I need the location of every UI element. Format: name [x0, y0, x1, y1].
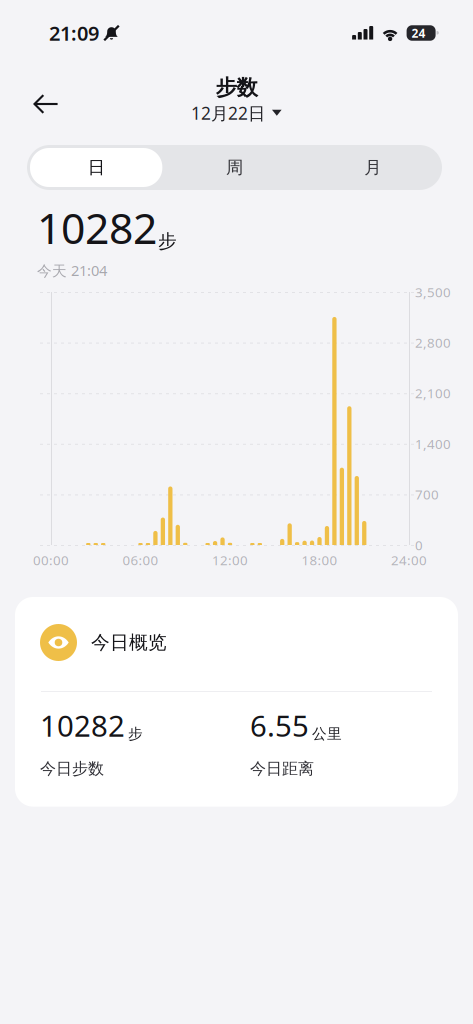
staticText: 10282 [37, 199, 157, 256]
staticText: 700 [415, 485, 439, 503]
staticText: 步数 [215, 74, 257, 101]
staticText: 今日概览 [91, 631, 167, 654]
staticText: 2,100 [415, 384, 451, 402]
staticText: 步 [158, 230, 177, 253]
button[interactable]: 月 [304, 145, 442, 190]
staticText: 日 [88, 157, 105, 178]
staticText: 06:00 [122, 551, 158, 569]
staticText: 10282 [40, 706, 125, 745]
staticText: 今日步数 [40, 759, 104, 779]
staticText: 今天 21:04 [37, 261, 107, 280]
staticText: 18:00 [301, 551, 337, 569]
staticText: 24:00 [391, 551, 427, 569]
staticText: 0 [415, 536, 423, 554]
staticText: 3,500 [415, 283, 451, 301]
staticText: 周 [226, 157, 243, 178]
staticText: 2,800 [415, 334, 451, 351]
staticText: 24 [412, 25, 426, 41]
staticText: 1,400 [415, 435, 451, 453]
staticText: 今日距离 [250, 759, 314, 779]
staticText: 00:00 [33, 551, 69, 569]
button[interactable]: 12月22日 [191, 101, 282, 124]
button[interactable]: Back [21, 80, 70, 127]
staticText: 公里 [312, 725, 342, 743]
button[interactable]: 日 [27, 145, 165, 190]
staticText: 6.55 [250, 706, 309, 745]
staticText: 12月22日 [191, 101, 265, 124]
button[interactable]: 周 [165, 145, 304, 190]
staticText: 21:09 [49, 20, 99, 46]
staticText: 步 [128, 725, 143, 743]
staticText: 月 [364, 157, 381, 178]
staticText: 12:00 [212, 551, 248, 569]
